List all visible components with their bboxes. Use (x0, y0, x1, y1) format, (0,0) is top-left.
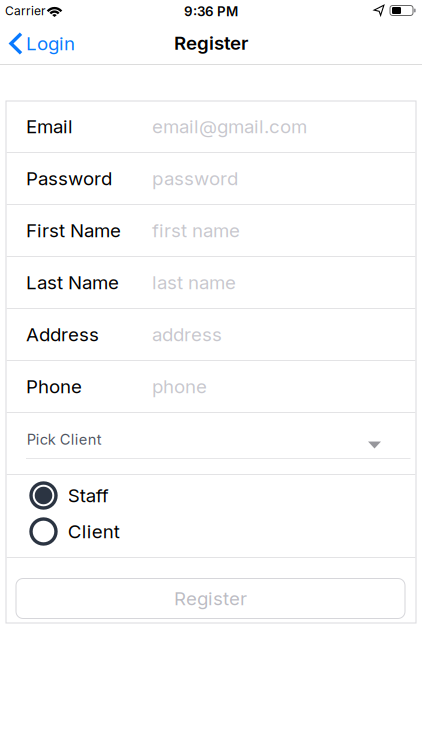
button[interactable]: Email (5, 100, 416, 152)
staticText: Address (26, 323, 99, 346)
staticText: Phone (26, 375, 82, 398)
staticText: Password (26, 167, 112, 190)
button[interactable]: Last Name (5, 256, 416, 308)
button[interactable]: Staff (29, 478, 199, 512)
staticText: phone (152, 375, 207, 398)
staticText: address (152, 323, 222, 346)
staticText: Pick Client (27, 431, 102, 448)
button[interactable]: Login (9, 28, 89, 58)
button[interactable]: First Name (5, 204, 416, 256)
staticText: Register (174, 32, 248, 54)
staticText: Register (174, 587, 247, 610)
staticText: Email (26, 115, 73, 138)
staticText: Last Name (26, 271, 119, 294)
staticText: Staff (68, 484, 109, 507)
staticText: First Name (26, 219, 121, 242)
button[interactable]: Address (5, 308, 416, 360)
button[interactable]: Pick Client (5, 412, 416, 474)
button[interactable]: Password (5, 152, 416, 204)
staticText: 9:36 PM (184, 3, 238, 19)
staticText: last name (152, 271, 236, 294)
button[interactable]: Register (15, 578, 405, 619)
staticText: first name (152, 219, 240, 242)
staticText: email@gmail.com (152, 115, 307, 138)
button[interactable]: Client (29, 514, 199, 548)
staticText: Login (26, 32, 75, 55)
staticText: password (152, 167, 238, 190)
staticText: Client (68, 520, 120, 543)
button[interactable]: Phone (5, 360, 416, 412)
staticText: Carrier (5, 4, 46, 18)
